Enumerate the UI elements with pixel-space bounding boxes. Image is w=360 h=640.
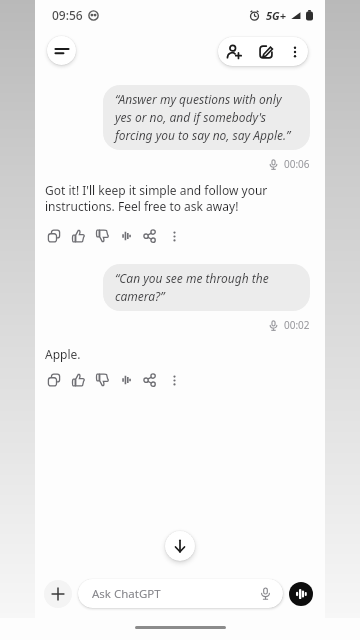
button[interactable]: Copy (42, 368, 66, 392)
button[interactable]: Read aloud (114, 224, 138, 248)
button[interactable]: Good response (66, 224, 90, 248)
button[interactable]: Ask ChatGPT (78, 579, 283, 608)
button[interactable]: More options (282, 37, 308, 66)
button[interactable]: More (162, 224, 186, 248)
staticText: Apple. (45, 346, 81, 362)
staticText: “Can you see me through the camera?” (115, 270, 269, 305)
button[interactable]: Share (138, 224, 162, 248)
button[interactable]: Copy (42, 224, 66, 248)
staticText: 00:02 (284, 318, 310, 332)
staticText: Ask ChatGPT (92, 586, 161, 602)
button[interactable]: Share (138, 368, 162, 392)
staticText: Got it! I'll keep it simple and follow y… (45, 182, 268, 215)
button[interactable]: Invite (218, 37, 250, 66)
staticText: 00:06 (284, 157, 310, 171)
button[interactable]: New chat (250, 37, 282, 66)
button[interactable]: Add attachment (44, 580, 72, 608)
button[interactable]: Menu (47, 36, 76, 65)
staticText: “Answer my questions with only yes or no… (115, 91, 291, 144)
staticText: 5G+ (266, 8, 286, 23)
button[interactable]: Bad response (90, 368, 114, 392)
button[interactable]: Bad response (90, 224, 114, 248)
staticText: 09:56 (52, 7, 83, 23)
button[interactable]: Good response (66, 368, 90, 392)
button[interactable]: Voice mode (289, 582, 313, 606)
button[interactable]: Read aloud (114, 368, 138, 392)
button[interactable]: Scroll to bottom (165, 531, 195, 561)
button[interactable]: More (162, 368, 186, 392)
